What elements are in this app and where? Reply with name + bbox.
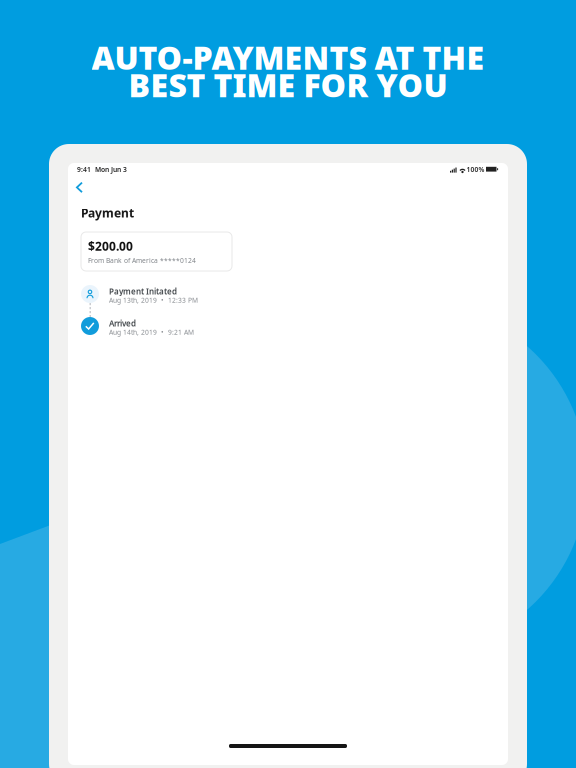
staticText: Aug 13th, 2019 • 12:33 PM <box>109 296 198 304</box>
staticText: Payment <box>81 205 134 221</box>
staticText: AUTO-PAYMENTS AT THE <box>91 36 484 78</box>
button[interactable]: Back <box>70 176 90 199</box>
staticText: 9:41 Mon Jun 3 <box>77 165 127 174</box>
staticText: From Bank of America *****0124 <box>88 256 196 265</box>
staticText: Arrived <box>109 318 136 329</box>
staticText: Aug 14th, 2019 • 9:21 AM <box>109 328 194 336</box>
staticText: BEST TIME FOR YOU <box>128 63 447 106</box>
staticText: 100% <box>466 165 484 174</box>
staticText: Payment Initated <box>109 286 177 297</box>
staticText: $200.00 <box>88 238 133 254</box>
